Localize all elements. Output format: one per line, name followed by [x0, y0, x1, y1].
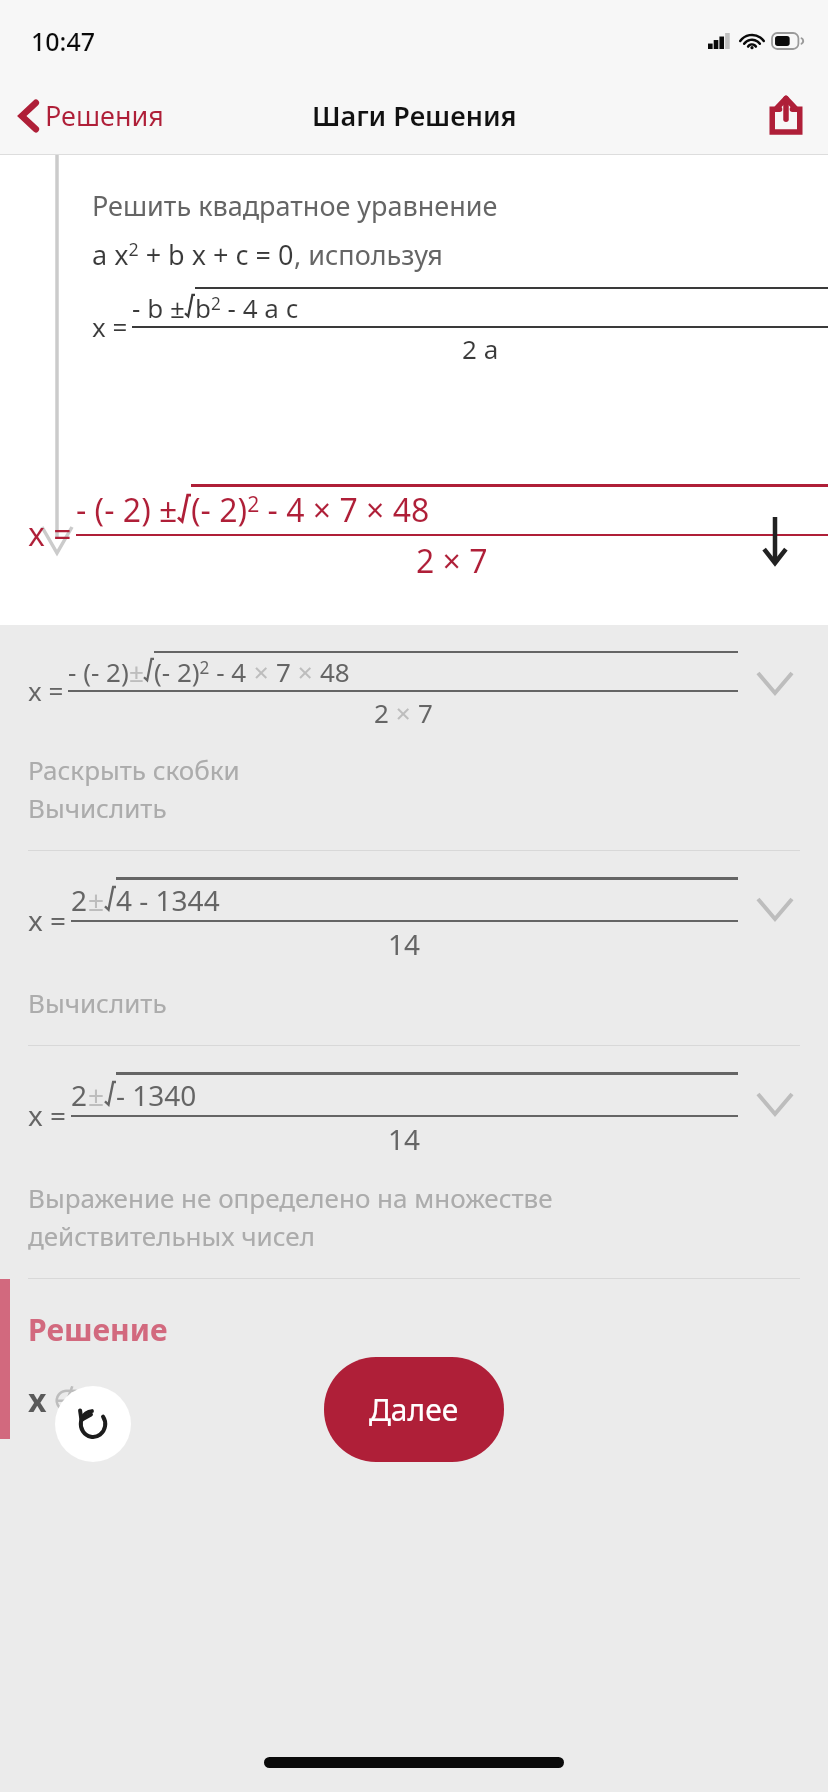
button[interactable]: Scroll down — [758, 517, 792, 563]
button[interactable]: Решения — [0, 89, 176, 142]
staticText: x = — [92, 309, 128, 344]
staticText: 2 a — [462, 331, 499, 366]
staticText: 2 — [71, 1076, 88, 1114]
staticText: - (- 2) ± — [76, 488, 178, 532]
staticText: Далее — [369, 1389, 459, 1430]
staticText: - b ± — [132, 290, 185, 325]
staticText: Решение — [28, 1309, 168, 1350]
staticText: ∉ — [53, 1383, 80, 1418]
staticText: 14 — [388, 1120, 421, 1158]
staticText: ± — [129, 654, 144, 689]
staticText: , используя — [294, 236, 443, 273]
staticText: × — [389, 695, 418, 730]
button[interactable]: Share — [744, 83, 828, 147]
button[interactable]: x = — [0, 850, 828, 1045]
staticText: a x2 + b x + c = 0 — [92, 236, 294, 273]
staticText: - 1340 — [116, 1076, 197, 1114]
staticText: Раскрыть скобки — [28, 752, 240, 787]
staticText: x = — [28, 673, 64, 708]
staticText: ± — [88, 881, 105, 919]
staticText: x = — [28, 1096, 67, 1134]
staticText: × — [247, 654, 276, 689]
staticText: x = — [28, 512, 72, 556]
staticText: 4 - 1344 — [116, 881, 220, 919]
staticText: Выражение не определено на множестве — [28, 1180, 553, 1215]
staticText: ± — [88, 1076, 105, 1114]
staticText: 7 — [276, 654, 291, 689]
staticText: b2 - 4 a c — [195, 290, 299, 325]
staticText: × — [291, 654, 320, 689]
staticText: действительных чисел — [28, 1218, 315, 1253]
button[interactable]: Далее — [324, 1357, 504, 1462]
button[interactable]: Undo — [55, 1386, 131, 1462]
staticText: Вычислить — [28, 985, 167, 1020]
staticText: x — [28, 1378, 47, 1422]
staticText: Решить квадратное уравнение — [92, 187, 498, 224]
staticText: - (- 2) — [68, 654, 129, 689]
button[interactable]: x = — [0, 625, 828, 850]
staticText: 2 × 7 — [416, 539, 488, 583]
staticText: Вычислить — [28, 790, 167, 825]
staticText: 7 — [418, 695, 433, 730]
staticText: (- 2)2 - 4 × 7 × 48 — [191, 488, 430, 532]
staticText: 10:47 — [31, 24, 96, 58]
staticText: 2 — [71, 881, 88, 919]
staticText: 2 — [374, 695, 389, 730]
staticText: ℝ — [84, 1378, 107, 1422]
staticText: 48 — [320, 654, 350, 689]
staticText: 14 — [388, 925, 421, 963]
staticText: Шаги Решения — [312, 97, 517, 134]
button[interactable]: x = — [0, 1045, 828, 1278]
staticText: Решения — [45, 97, 164, 134]
staticText: x = — [28, 901, 67, 939]
staticText: (- 2)2 - 4 — [154, 654, 247, 689]
